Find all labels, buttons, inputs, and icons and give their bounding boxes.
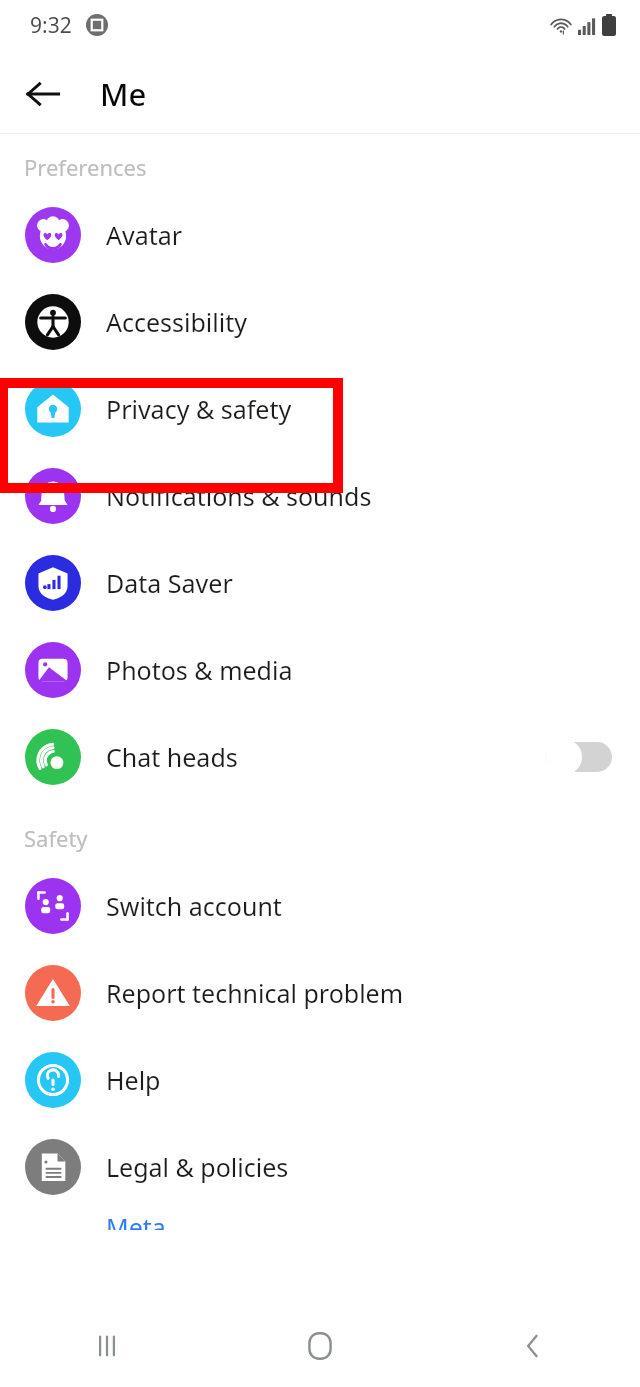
button[interactable]: Help bbox=[0, 1036, 640, 1123]
button[interactable]: Privacy & safety bbox=[0, 365, 640, 452]
button[interactable]: Legal & policies bbox=[0, 1123, 640, 1210]
button[interactable]: Notifications & sounds bbox=[0, 452, 640, 539]
staticText: Meta bbox=[106, 1210, 166, 1230]
staticText: Help bbox=[106, 1063, 161, 1097]
staticText: Report technical problem bbox=[106, 976, 404, 1010]
button[interactable]: Meta bbox=[0, 1210, 640, 1230]
staticText: Legal & policies bbox=[106, 1150, 289, 1184]
button[interactable]: Chat heads bbox=[0, 713, 640, 800]
button[interactable] bbox=[546, 736, 612, 778]
button[interactable]: Back bbox=[14, 65, 72, 123]
button[interactable]: Avatar bbox=[0, 191, 640, 278]
button[interactable]: Recent apps bbox=[69, 1308, 145, 1384]
button[interactable]: Home bbox=[282, 1308, 358, 1384]
staticText: Privacy & safety bbox=[106, 392, 292, 426]
button[interactable]: Accessibility bbox=[0, 278, 640, 365]
button[interactable]: Photos & media bbox=[0, 626, 640, 713]
button[interactable]: Report technical problem bbox=[0, 949, 640, 1036]
staticText: 9:32 bbox=[30, 11, 72, 40]
button[interactable]: Switch account bbox=[0, 862, 640, 949]
staticText: Accessibility bbox=[106, 305, 247, 339]
staticText: Preferences bbox=[24, 152, 147, 182]
staticText: Chat heads bbox=[106, 740, 238, 774]
staticText: Switch account bbox=[106, 889, 282, 923]
staticText: Data Saver bbox=[106, 566, 233, 600]
staticText: Avatar bbox=[106, 218, 183, 252]
staticText: Notifications & sounds bbox=[106, 479, 372, 513]
button[interactable]: Data Saver bbox=[0, 539, 640, 626]
staticText: Photos & media bbox=[106, 653, 293, 687]
staticText: Me bbox=[100, 73, 147, 115]
button[interactable]: Back bbox=[495, 1308, 571, 1384]
staticText: Safety bbox=[24, 823, 88, 853]
